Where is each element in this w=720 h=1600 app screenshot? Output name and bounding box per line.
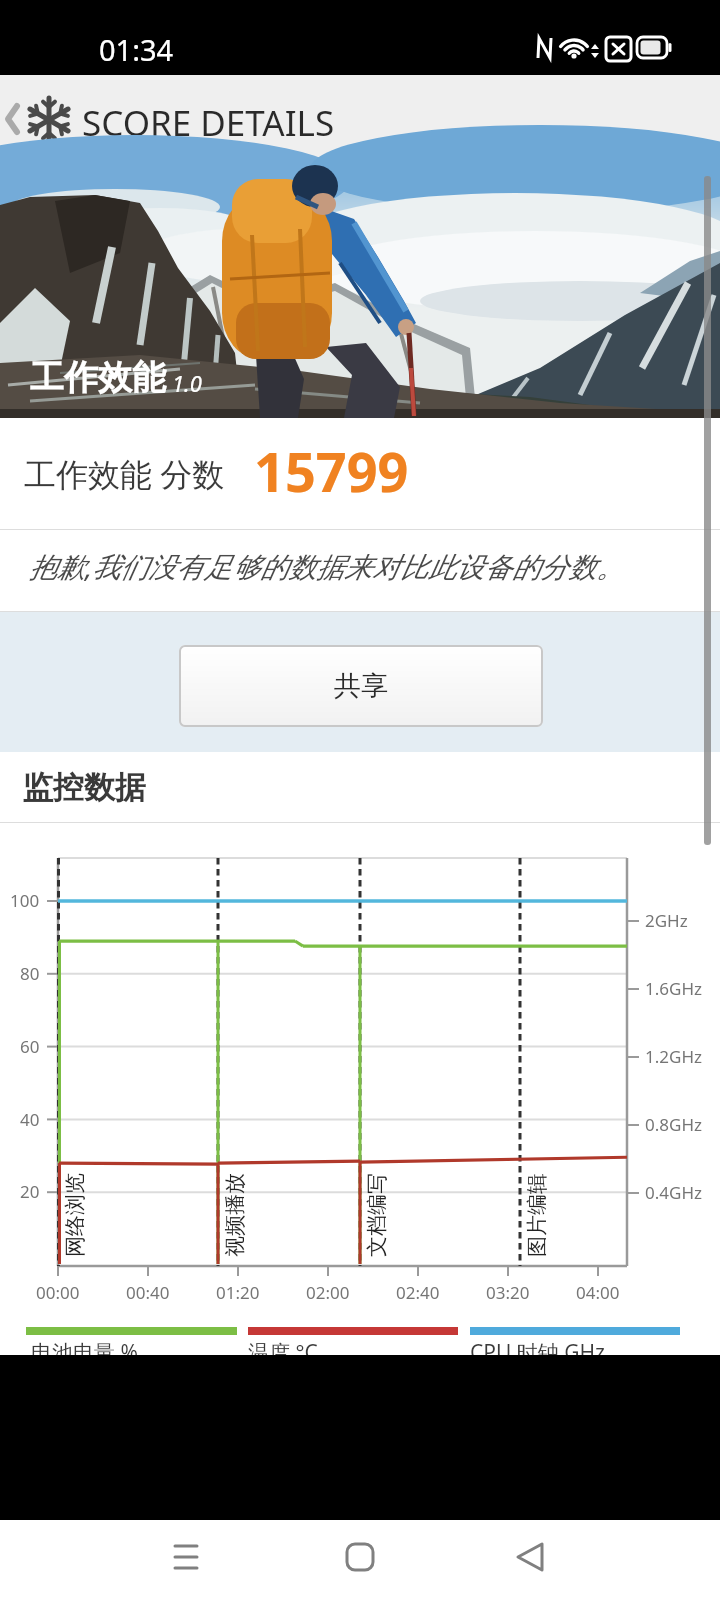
button[interactable]: 共享 xyxy=(179,645,543,727)
staticText: 01:20 xyxy=(216,1281,260,1304)
staticText: 60 xyxy=(20,1035,40,1058)
staticText: 100 xyxy=(10,889,40,912)
staticText: 图片编辑 xyxy=(524,1173,550,1257)
staticText: 电池电量 % xyxy=(31,1338,138,1367)
staticText: 工作效能 分数 xyxy=(24,452,225,496)
staticText: 监控数据 xyxy=(22,768,146,807)
staticText: 抱歉,我们没有足够的数据来对比此设备的分数。 xyxy=(29,547,625,585)
staticText: 02:00 xyxy=(306,1281,350,1304)
staticText: CPU 时钟 GHz xyxy=(470,1338,605,1367)
staticText: 40 xyxy=(20,1108,40,1131)
staticText: 1.0 xyxy=(172,368,202,398)
button[interactable] xyxy=(320,1525,400,1595)
staticText: 0.8GHz xyxy=(645,1113,702,1136)
staticText: 0.4GHz xyxy=(645,1181,702,1204)
staticText: 温度 °C xyxy=(248,1338,318,1367)
staticText: 视频播放 xyxy=(222,1173,248,1257)
button[interactable] xyxy=(0,75,40,163)
staticText: 04:00 xyxy=(576,1281,620,1304)
staticText: 工作效能 xyxy=(30,356,166,399)
staticText: 00:40 xyxy=(126,1281,170,1304)
staticText: 2GHz xyxy=(645,909,688,932)
staticText: SCORE DETAILS xyxy=(82,99,335,147)
button[interactable] xyxy=(146,1525,226,1595)
staticText: 80 xyxy=(20,962,40,985)
staticText: 02:40 xyxy=(396,1281,440,1304)
staticText: 1.2GHz xyxy=(645,1045,702,1068)
staticText: 01:34 xyxy=(99,30,174,69)
staticText: 共享 xyxy=(334,669,388,703)
button[interactable] xyxy=(490,1525,570,1595)
staticText: 20 xyxy=(20,1180,40,1203)
staticText: 15799 xyxy=(254,434,409,508)
staticText: 03:20 xyxy=(486,1281,530,1304)
staticText: 1.6GHz xyxy=(645,977,702,1000)
staticText: 00:00 xyxy=(36,1281,80,1304)
staticText: 网络浏览 xyxy=(62,1173,88,1257)
staticText: 文档编写 xyxy=(364,1173,390,1257)
